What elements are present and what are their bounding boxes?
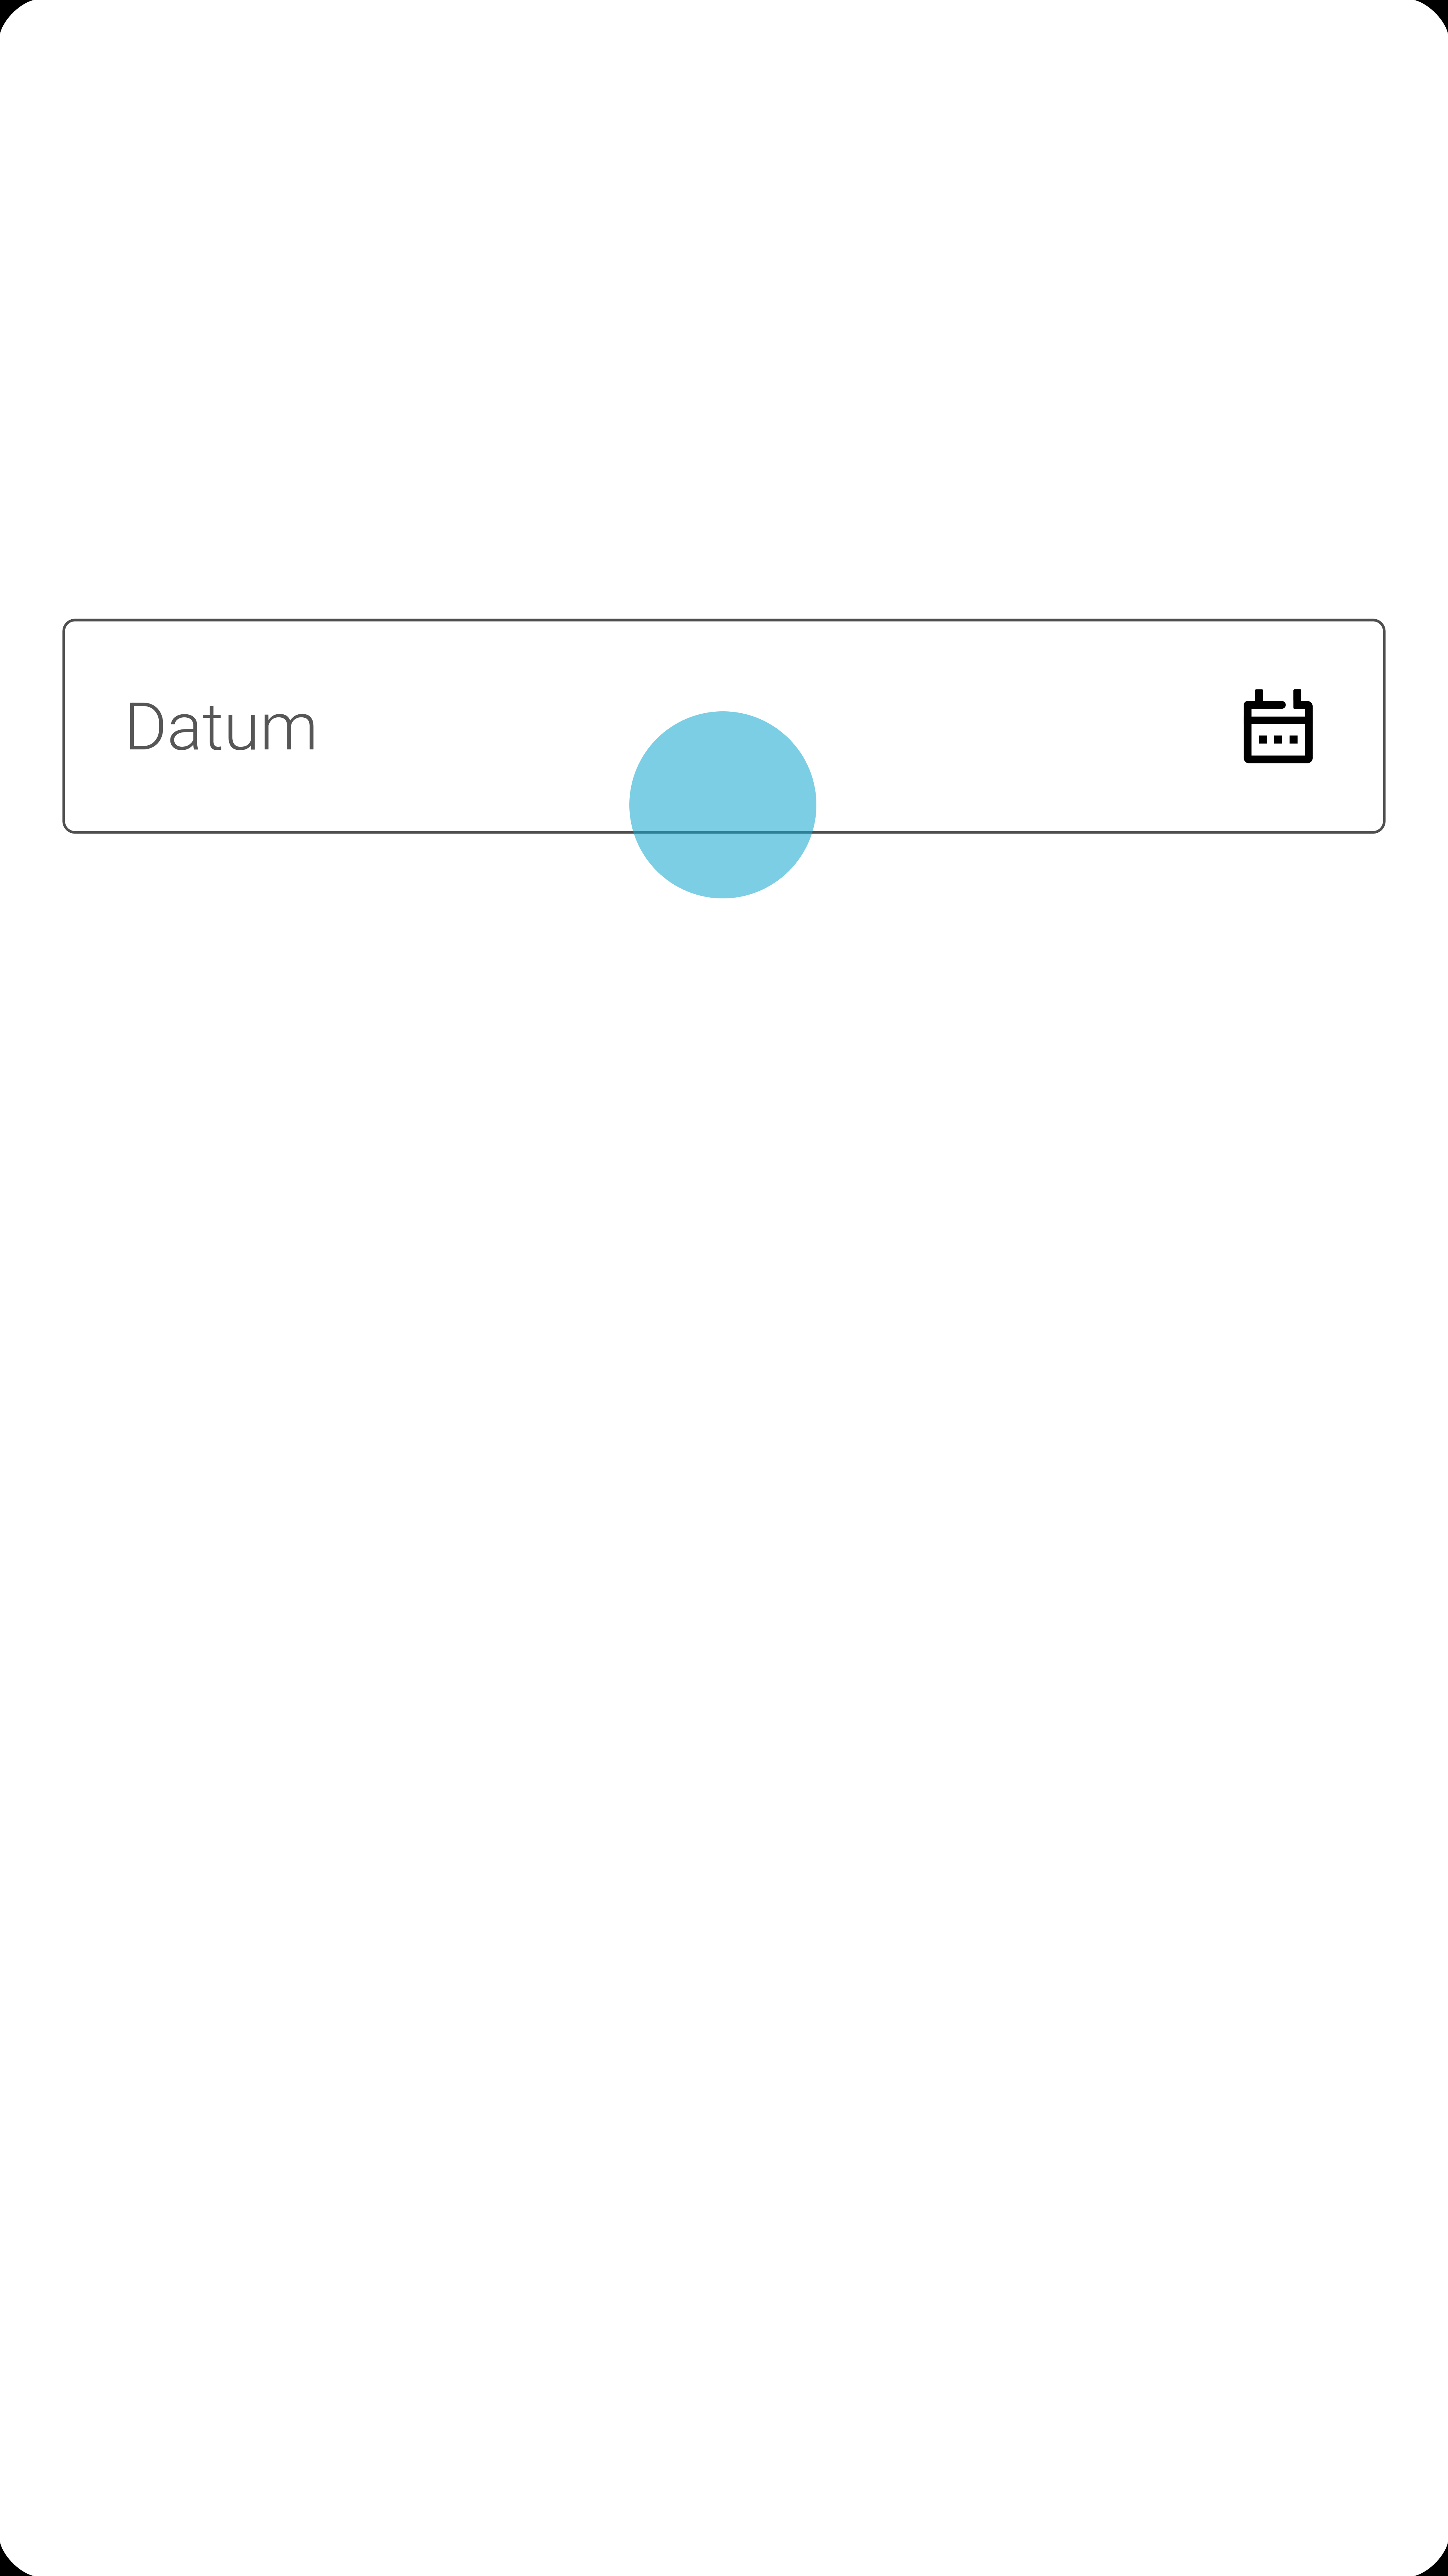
staticText: Datum [124, 688, 318, 766]
button[interactable]: Datum [64, 620, 1384, 832]
button[interactable]: Open calendar [1232, 680, 1324, 772]
